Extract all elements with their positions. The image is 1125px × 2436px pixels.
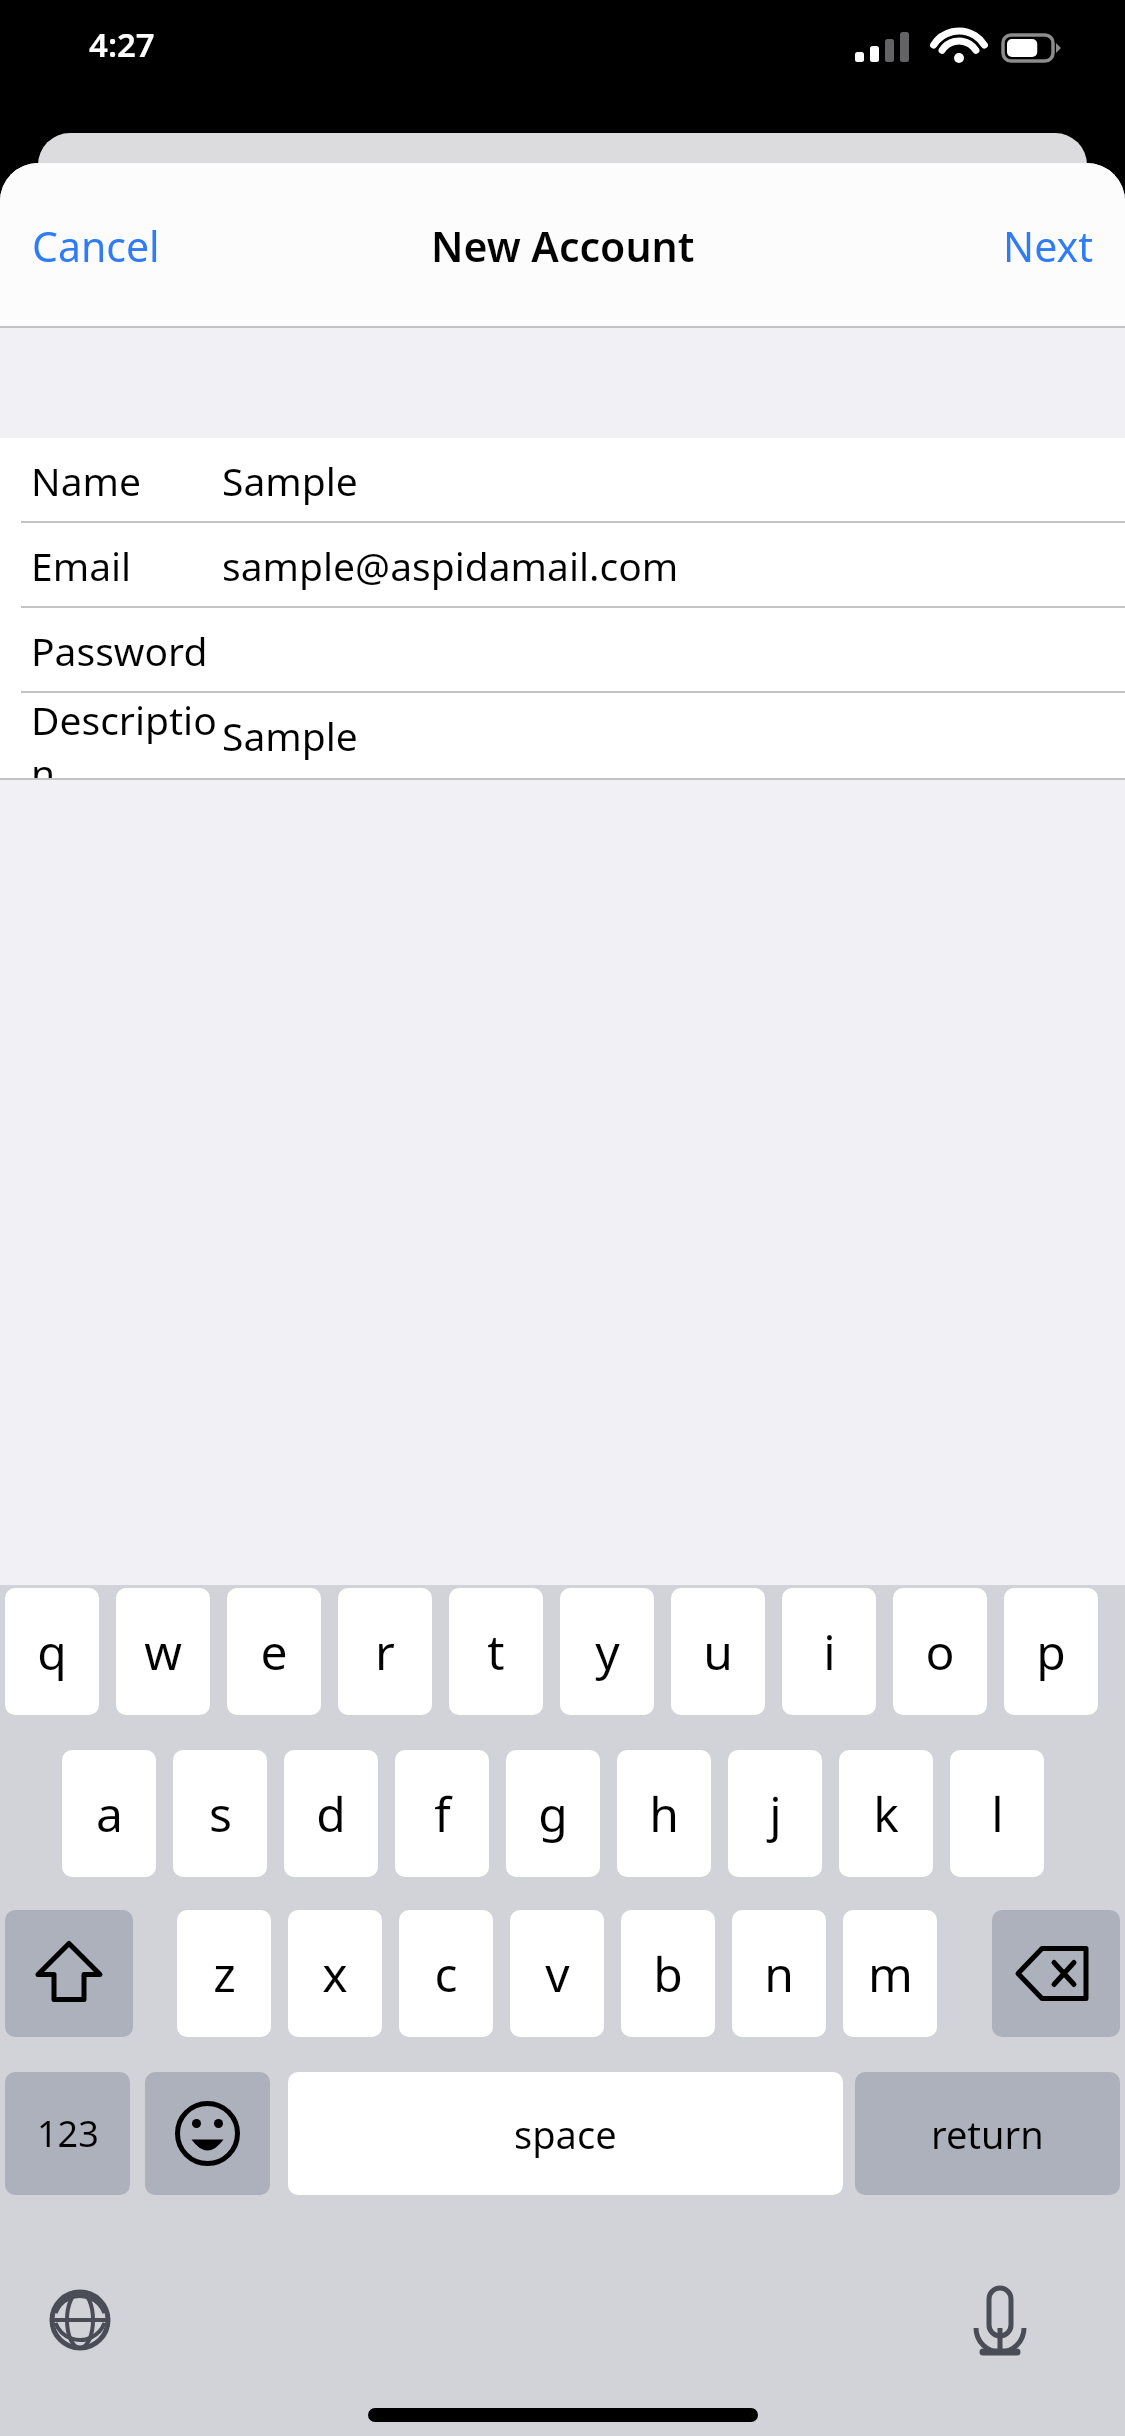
staticText: n xyxy=(764,1941,794,2006)
staticText: h xyxy=(649,1781,679,1846)
staticText: t xyxy=(487,1619,505,1684)
button[interactable]: i xyxy=(782,1588,876,1715)
staticText: j xyxy=(769,1781,782,1846)
staticText: k xyxy=(873,1781,899,1846)
button[interactable]: Emoji xyxy=(145,2072,270,2195)
button[interactable]: Name xyxy=(0,438,1125,523)
staticText: r xyxy=(375,1619,395,1684)
staticText: Sample xyxy=(222,709,358,762)
staticText: a xyxy=(96,1781,123,1846)
staticText: s xyxy=(209,1781,232,1846)
staticText: w xyxy=(144,1619,182,1684)
staticText: b xyxy=(653,1941,683,2006)
staticText: sample@aspidamail.com xyxy=(222,539,679,592)
button[interactable]: f xyxy=(395,1750,489,1877)
staticText: x xyxy=(322,1941,348,2006)
staticText: New Account xyxy=(431,218,695,274)
staticText: e xyxy=(260,1619,288,1684)
staticText: l xyxy=(991,1781,1004,1846)
staticText: Cancel xyxy=(32,218,160,274)
button[interactable]: Description xyxy=(0,693,1125,778)
staticText: o xyxy=(925,1619,955,1684)
staticText: Next xyxy=(1003,218,1093,274)
button[interactable]: n xyxy=(732,1910,826,2037)
button[interactable]: q xyxy=(5,1588,99,1715)
button[interactable]: v xyxy=(510,1910,604,2037)
button[interactable]: a xyxy=(62,1750,156,1877)
button[interactable]: l xyxy=(950,1750,1044,1877)
button[interactable]: z xyxy=(177,1910,271,2037)
button[interactable]: k xyxy=(839,1750,933,1877)
button[interactable]: Dictate xyxy=(950,2270,1050,2370)
button[interactable]: Backspace xyxy=(992,1910,1120,2037)
button[interactable]: b xyxy=(621,1910,715,2037)
staticText: space xyxy=(514,2108,617,2160)
button[interactable]: o xyxy=(893,1588,987,1715)
button[interactable]: Cancel xyxy=(10,204,182,288)
button[interactable]: Next xyxy=(981,204,1115,288)
button[interactable]: s xyxy=(173,1750,267,1877)
button[interactable]: d xyxy=(284,1750,378,1877)
button[interactable]: g xyxy=(506,1750,600,1877)
button[interactable]: return xyxy=(855,2072,1120,2195)
button[interactable]: r xyxy=(338,1588,432,1715)
staticText: f xyxy=(434,1781,451,1846)
staticText: z xyxy=(213,1941,236,2006)
staticText: u xyxy=(703,1619,733,1684)
button[interactable]: Password xyxy=(0,608,1125,693)
staticText: c xyxy=(434,1941,458,2006)
button[interactable]: w xyxy=(116,1588,210,1715)
button[interactable]: u xyxy=(671,1588,765,1715)
button[interactable]: x xyxy=(288,1910,382,2037)
staticText: g xyxy=(538,1781,568,1846)
staticText: 4:27 xyxy=(89,22,155,67)
staticText: q xyxy=(37,1619,67,1684)
staticText: p xyxy=(1036,1619,1066,1684)
button[interactable]: c xyxy=(399,1910,493,2037)
staticText: Description xyxy=(31,693,222,778)
button[interactable]: 123 xyxy=(5,2072,130,2195)
button[interactable]: space xyxy=(288,2072,843,2195)
staticText: Sample xyxy=(222,454,358,507)
staticText: Password xyxy=(31,624,208,677)
staticText: m xyxy=(868,1941,913,2006)
staticText: d xyxy=(316,1781,346,1846)
button[interactable]: Email xyxy=(0,523,1125,608)
staticText: 123 xyxy=(37,2109,99,2158)
button[interactable]: m xyxy=(843,1910,937,2037)
button[interactable]: j xyxy=(728,1750,822,1877)
staticText: y xyxy=(595,1619,620,1684)
button[interactable]: Shift xyxy=(5,1910,133,2037)
button[interactable]: e xyxy=(227,1588,321,1715)
button[interactable]: p xyxy=(1004,1588,1098,1715)
button[interactable]: t xyxy=(449,1588,543,1715)
staticText: i xyxy=(823,1619,836,1684)
button[interactable]: Change keyboard xyxy=(30,2270,130,2370)
staticText: Name xyxy=(31,454,141,507)
button[interactable]: y xyxy=(560,1588,654,1715)
staticText: return xyxy=(931,2108,1044,2160)
staticText: Email xyxy=(31,539,132,592)
button[interactable]: h xyxy=(617,1750,711,1877)
staticText: v xyxy=(545,1941,570,2006)
